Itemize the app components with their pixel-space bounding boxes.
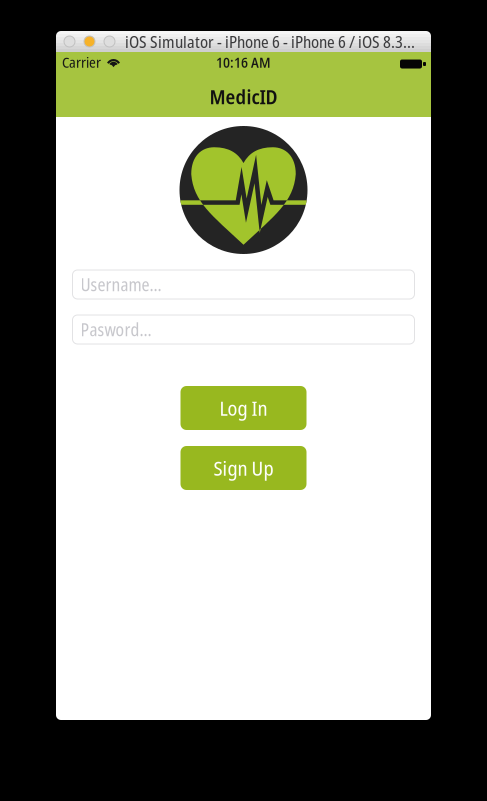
button[interactable]: Sign Up [180,446,306,490]
staticText: Pasword... [80,318,151,341]
staticText: Sign Up [213,454,273,482]
staticText: Username... [80,273,161,296]
staticText: 10:16 AM [216,52,271,72]
button[interactable]: Username... [72,270,414,299]
staticText: Carrier [62,52,101,72]
staticText: MedicID [209,83,277,110]
button[interactable]: Log In [180,386,306,430]
staticText: Log In [219,394,267,422]
button[interactable]: Pasword... [72,315,414,344]
staticText: iOS Simulator - iPhone 6 - iPhone 6 / iO… [125,30,415,53]
